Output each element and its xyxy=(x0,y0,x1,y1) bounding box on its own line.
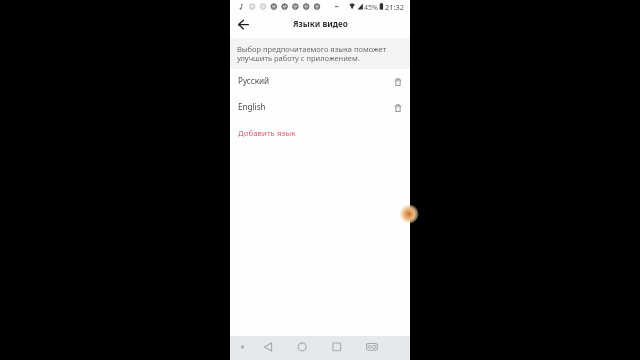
button[interactable]: Back xyxy=(259,339,277,357)
button[interactable]: Русский xyxy=(230,67,410,93)
button[interactable]: English xyxy=(230,93,410,119)
staticText: Русский xyxy=(238,75,270,86)
staticText: 45% xyxy=(364,2,379,12)
button[interactable]: Home xyxy=(293,339,311,357)
button[interactable]: Back xyxy=(232,16,249,33)
staticText: English xyxy=(238,101,266,112)
staticText: 21:32 xyxy=(385,2,404,12)
staticText: Языки видео xyxy=(293,18,348,29)
button[interactable]: Delete Русский xyxy=(391,75,405,89)
staticText: Добавить язык xyxy=(238,128,296,139)
staticText: Выбор предпочитаемого языка поможет улуч… xyxy=(237,44,417,64)
button[interactable]: Recents xyxy=(328,339,346,357)
button[interactable]: Menu xyxy=(234,339,252,357)
button[interactable]: Split screen xyxy=(363,339,381,357)
button[interactable]: Добавить язык xyxy=(230,120,410,146)
button[interactable]: Delete English xyxy=(391,101,405,115)
